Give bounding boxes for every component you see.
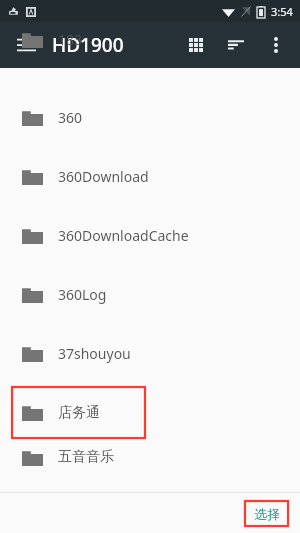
button[interactable]: 37shouyou [0,324,300,383]
button[interactable]: Grid view [176,25,216,65]
staticText: 选择 [254,506,280,522]
staticText: 360Log [58,285,107,304]
button[interactable]: 店务通 [0,383,300,442]
button[interactable]: 选择 [245,501,288,526]
staticText: 183 [58,30,83,49]
button[interactable]: 五音音乐 [0,442,300,472]
button[interactable]: 360 [0,88,300,147]
staticText: 360Download [58,167,149,186]
staticText: 360DownloadCache [58,226,189,245]
button[interactable]: More options [256,25,296,65]
staticText: 店务通 [58,404,100,422]
button[interactable]: 360Log [0,265,300,324]
button[interactable]: Open navigation drawer [6,25,46,65]
staticText: HD1900 [52,32,124,58]
button[interactable]: Sort [216,25,256,65]
button[interactable]: 360Download [0,147,300,206]
button[interactable]: 360DownloadCache [0,206,300,265]
staticText: 五音音乐 [58,448,114,466]
staticText: 37shouyou [58,344,131,363]
staticText: 3:54 [271,4,293,19]
staticText: 360 [58,108,83,127]
